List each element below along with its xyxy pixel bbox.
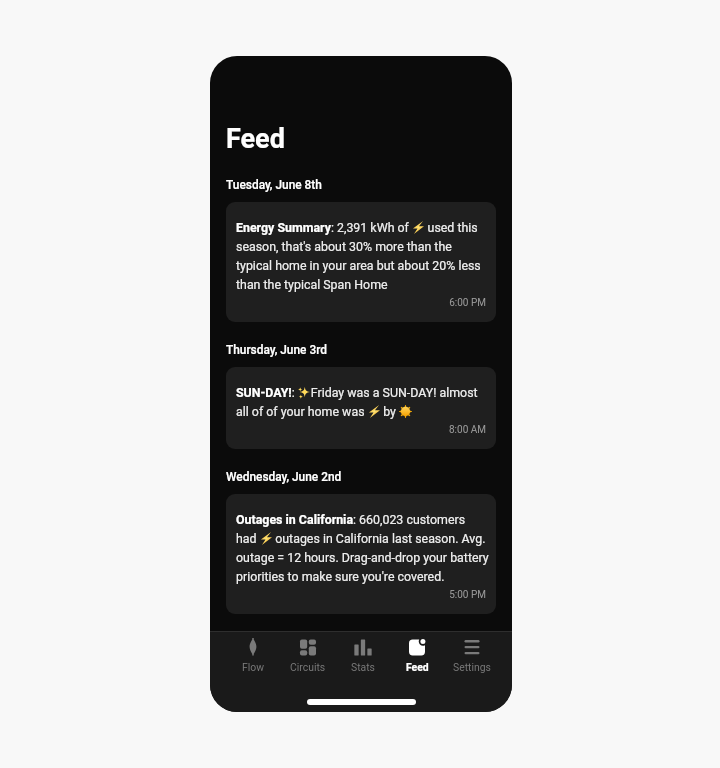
staticText: Outages in California: 660,023 customers… [236,512,489,584]
button[interactable]: SUN-DAY!: ✨Friday was a SUN-DAY! almost … [226,367,496,449]
button[interactable]: Flow [229,632,277,673]
staticText: 6:00 PM [236,297,486,309]
other: Flow [243,637,263,656]
button[interactable]: Outages in California: 660,023 customers… [226,494,496,614]
button[interactable]: Circuits [284,632,332,673]
staticText: Circuits [290,661,326,673]
other: Circuits [298,637,318,656]
button[interactable]: Feed [393,632,441,673]
staticText: Flow [242,661,265,673]
staticText: 8:00 AM [236,424,486,436]
staticText: Feed [226,123,285,155]
staticText: Tuesday, June 8th [226,178,322,192]
other: Stats [353,637,373,656]
other: Feed [407,637,427,656]
button[interactable]: Settings [448,632,496,673]
staticText: SUN-DAY!: ✨Friday was a SUN-DAY! almost … [236,385,478,419]
staticText: Wednesday, June 2nd [226,470,342,484]
staticText: Energy Summary: 2,391 kWh of ⚡ used this… [236,220,481,292]
staticText: Stats [351,661,375,673]
other: Settings [462,637,482,656]
staticText: Feed [406,661,429,673]
staticText: Thursday, June 3rd [226,343,327,357]
staticText: 5:00 PM [236,589,486,601]
button[interactable]: Energy Summary: 2,391 kWh of ⚡ used this… [226,202,496,322]
button[interactable]: Stats [339,632,387,673]
staticText: Settings [453,661,491,673]
